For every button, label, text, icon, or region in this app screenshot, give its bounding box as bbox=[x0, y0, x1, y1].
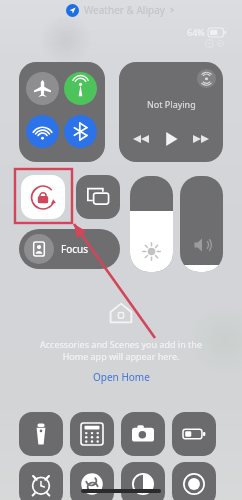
button[interactable]: Camera bbox=[121, 412, 165, 456]
button[interactable]: Wi-Fi bbox=[26, 115, 59, 148]
button[interactable]: Screen Recording bbox=[172, 462, 216, 500]
button[interactable]: Volume bbox=[180, 176, 223, 272]
staticText: Weather & Alipay bbox=[84, 3, 165, 17]
button[interactable]: Play bbox=[160, 128, 182, 150]
button[interactable]: AirPlay bbox=[197, 69, 216, 88]
button[interactable]: Shazam bbox=[70, 462, 114, 500]
button[interactable]: Alarm bbox=[19, 462, 63, 500]
staticText: Accessories and Scenes you add in the Ho… bbox=[40, 338, 202, 363]
button[interactable]: AirPlay bbox=[119, 62, 223, 162]
button[interactable]: Cellular Data bbox=[64, 72, 97, 105]
staticText: Not Playing bbox=[147, 98, 196, 110]
staticText: Focus bbox=[61, 242, 89, 256]
button[interactable]: Open Home bbox=[85, 368, 158, 386]
button[interactable]: Low Power Mode bbox=[172, 412, 216, 456]
button[interactable]: Previous bbox=[131, 129, 151, 149]
button[interactable]: Flashlight bbox=[19, 412, 63, 456]
button[interactable]: Rotation Lock bbox=[21, 175, 65, 219]
button[interactable]: Focus bbox=[19, 229, 120, 269]
staticText: Open Home bbox=[93, 370, 150, 384]
button[interactable]: Bluetooth bbox=[64, 115, 97, 148]
button[interactable]: Screen Mirroring bbox=[76, 175, 120, 219]
button[interactable]: Brightness bbox=[130, 176, 173, 272]
button[interactable]: Calculator bbox=[70, 412, 114, 456]
staticText: 64% bbox=[187, 26, 205, 38]
button[interactable]: Next bbox=[191, 129, 211, 149]
button[interactable]: Airplane Mode bbox=[26, 72, 59, 105]
button[interactable]: Dark Mode bbox=[121, 462, 165, 500]
